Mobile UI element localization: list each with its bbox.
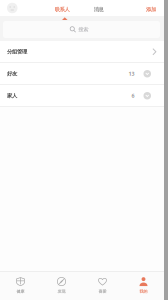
button[interactable]: 我的 bbox=[123, 272, 164, 300]
button[interactable]: 健康 bbox=[0, 272, 41, 300]
staticText: 添加 bbox=[146, 6, 156, 13]
staticText: 分组管理 bbox=[7, 48, 27, 55]
button[interactable]: 发现 bbox=[41, 272, 82, 300]
button[interactable]: 联系人 bbox=[50, 0, 73, 16]
staticText: 消息 bbox=[93, 6, 103, 13]
button[interactable]: 消息 bbox=[89, 0, 107, 16]
staticText: 6 bbox=[131, 92, 134, 99]
button[interactable]: Profile bbox=[0, 0, 24, 16]
button[interactable]: 家人 bbox=[0, 85, 164, 106]
button[interactable]: 分组管理 bbox=[0, 41, 164, 62]
staticText: 我的 bbox=[139, 289, 147, 294]
staticText: 搜索 bbox=[78, 26, 88, 33]
staticText: 喜爱 bbox=[98, 289, 106, 294]
staticText: 13 bbox=[128, 70, 134, 77]
staticText: 健康 bbox=[16, 289, 24, 294]
staticText: 好友 bbox=[7, 70, 17, 77]
staticText: 联系人 bbox=[54, 6, 69, 13]
button[interactable]: 好友 bbox=[0, 63, 164, 84]
staticText: 发现 bbox=[57, 289, 65, 294]
button[interactable]: 添加 bbox=[141, 0, 164, 16]
staticText: 家人 bbox=[7, 92, 17, 99]
button[interactable]: 喜爱 bbox=[82, 272, 123, 300]
